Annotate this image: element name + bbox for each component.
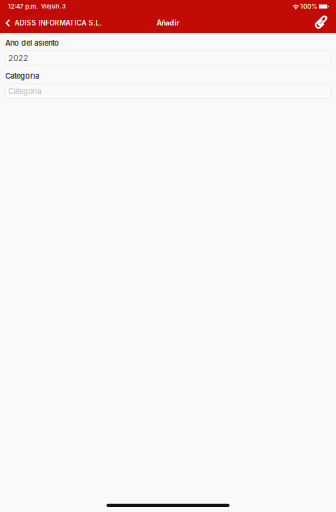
staticText: Categoria xyxy=(5,71,39,80)
button[interactable]: 2022 xyxy=(0,47,336,66)
staticText: Categoria xyxy=(8,87,41,96)
staticText: Añadir xyxy=(156,19,179,27)
button[interactable]: Adjuntar xyxy=(306,14,336,31)
staticText: 12:47 p.m. xyxy=(8,3,38,10)
button[interactable]: ADISS INFORMATICA S.L. xyxy=(0,16,108,30)
staticText: 100% xyxy=(300,3,317,10)
staticText: Año del asiento xyxy=(5,38,59,47)
staticText: Vie jun. 3 xyxy=(41,3,66,10)
button[interactable]: Categoria xyxy=(0,81,336,99)
staticText: ADISS INFORMATICA S.L. xyxy=(15,19,102,27)
staticText: 2022 xyxy=(8,53,28,63)
